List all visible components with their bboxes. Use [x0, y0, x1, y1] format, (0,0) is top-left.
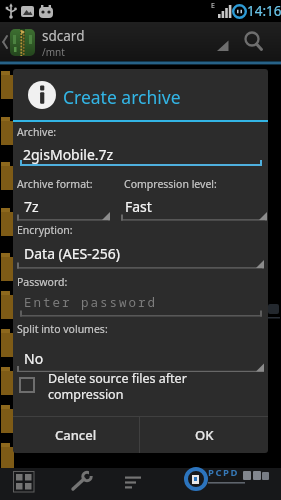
staticText: 2gisMobile.7z	[23, 145, 114, 164]
staticText: Encryption:	[17, 223, 73, 237]
staticText: sdcard	[42, 27, 85, 45]
staticText: Cancel	[55, 426, 97, 444]
button[interactable]	[17, 195, 110, 221]
staticText: Create archive	[63, 85, 181, 109]
staticText: 14:16	[247, 2, 281, 20]
staticText: Archive:	[17, 125, 57, 139]
button[interactable]: OK	[140, 417, 268, 453]
staticText: Compression level:	[124, 177, 217, 191]
staticText: Password:	[17, 275, 68, 289]
staticText: E	[211, 1, 215, 11]
button[interactable]	[66, 471, 100, 497]
staticText: Split into volumes:	[17, 322, 108, 336]
button[interactable]	[17, 241, 265, 269]
button[interactable]: Cancel	[13, 417, 139, 453]
staticText: Fast	[125, 197, 152, 216]
staticText: 7z	[24, 197, 39, 216]
button[interactable]	[20, 137, 262, 166]
button[interactable]	[121, 195, 267, 221]
staticText: Archive format:	[17, 177, 93, 191]
button[interactable]	[19, 377, 35, 393]
staticText: OK	[195, 426, 214, 444]
button[interactable]	[0, 22, 281, 61]
button[interactable]	[8, 471, 42, 497]
button[interactable]	[118, 471, 152, 497]
staticText: No	[24, 349, 44, 368]
button[interactable]	[20, 290, 262, 317]
staticText: PCPD	[208, 466, 239, 479]
staticText: Enter password	[24, 294, 158, 311]
button[interactable]	[17, 345, 265, 372]
staticText: Data (AES-256)	[24, 244, 120, 263]
staticText: Delete source files after compression	[48, 370, 187, 403]
staticText: /mnt	[42, 45, 65, 59]
